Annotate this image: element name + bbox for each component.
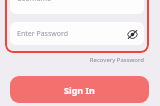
staticText: Recovery Password (89, 56, 144, 64)
button[interactable]: Recovery Password (88, 54, 144, 65)
button[interactable]: Enter Password (10, 22, 144, 45)
button[interactable]: Username (10, 0, 144, 14)
button[interactable]: Sign In (10, 76, 149, 103)
staticText: Enter Password (17, 29, 69, 39)
staticText: Sign In (64, 84, 95, 96)
button[interactable]: Show password (126, 28, 138, 40)
staticText: Username (17, 0, 52, 4)
